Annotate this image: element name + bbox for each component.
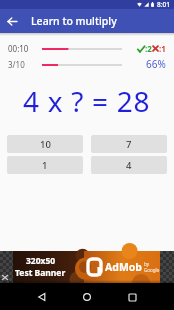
- staticText: 3/10: [8, 59, 36, 70]
- staticText: 00:10: [8, 43, 36, 54]
- staticText: 1: [42, 159, 48, 172]
- staticText: 320x50: [26, 255, 56, 267]
- staticText: 66%: [146, 57, 166, 71]
- button[interactable]: [0, 9, 24, 33]
- staticText: 4: [126, 159, 132, 172]
- button[interactable]: [120, 285, 144, 309]
- staticText: 10: [40, 138, 51, 151]
- button[interactable]: [30, 285, 54, 309]
- staticText: 7: [126, 138, 132, 151]
- staticText: Test Banner: [15, 267, 66, 279]
- button[interactable]: 7: [91, 135, 167, 153]
- staticText: AdMob: [105, 260, 143, 274]
- staticText: Learn to multiply: [31, 14, 117, 28]
- staticText: :1: [159, 43, 166, 54]
- staticText: 4 x ? = 28: [23, 82, 151, 120]
- staticText: :2: [145, 43, 152, 54]
- staticText: 8:01: [157, 0, 170, 9]
- button[interactable]: 1: [7, 156, 83, 174]
- button[interactable]: 10: [7, 135, 83, 153]
- button[interactable]: 320x50: [0, 251, 174, 283]
- button[interactable]: [75, 285, 99, 309]
- staticText: by Google: [144, 261, 160, 273]
- button[interactable]: 4: [91, 156, 167, 174]
